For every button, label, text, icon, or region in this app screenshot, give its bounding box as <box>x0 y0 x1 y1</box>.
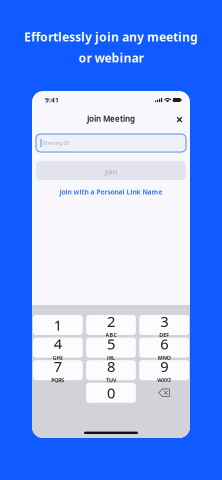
staticText: Join with a Personal Link Name <box>59 188 162 196</box>
staticText: WXYZ <box>157 377 171 384</box>
staticText: 8 <box>107 357 115 376</box>
button[interactable]: 9 <box>139 360 189 380</box>
staticText: 0 <box>107 383 115 403</box>
button[interactable]: 1 <box>33 315 83 335</box>
button[interactable]: 0 <box>86 383 136 403</box>
button[interactable]: 5 <box>86 338 136 358</box>
button[interactable]: 6 <box>139 338 189 358</box>
button[interactable]: Close <box>171 106 187 123</box>
button[interactable]: 3 <box>139 315 189 335</box>
button[interactable]: Join <box>36 161 186 180</box>
staticText: 3 <box>160 311 168 331</box>
staticText: Meeting ID <box>42 139 69 147</box>
staticText: PQRS <box>51 377 64 384</box>
staticText: 6 <box>160 334 168 354</box>
staticText: 2 <box>107 311 115 331</box>
button[interactable]: 2 <box>86 315 136 335</box>
staticText: 4 <box>54 334 62 354</box>
staticText: JKL <box>107 354 115 361</box>
staticText: DEF <box>159 331 169 338</box>
staticText: ABC <box>105 331 116 338</box>
staticText: Join Meeting <box>87 113 135 124</box>
staticText: 5 <box>107 334 115 354</box>
button[interactable]: Delete <box>139 383 189 403</box>
button[interactable]: 8 <box>86 360 136 380</box>
staticText: 9 <box>160 357 168 376</box>
button[interactable]: 4 <box>33 338 83 358</box>
button[interactable]: Join with a Personal Link Name <box>32 186 190 198</box>
staticText: 7 <box>54 357 62 376</box>
staticText: Join <box>105 168 117 176</box>
staticText: GHI <box>53 354 63 361</box>
button[interactable]: 7 <box>33 360 83 380</box>
staticText: Effortlessly join any meeting <box>24 29 198 45</box>
staticText: TUV <box>106 377 116 384</box>
staticText: or webinar <box>78 50 143 66</box>
staticText: 1 <box>54 315 62 335</box>
staticText: 9:41 <box>45 96 59 104</box>
staticText: MNO <box>158 354 171 361</box>
